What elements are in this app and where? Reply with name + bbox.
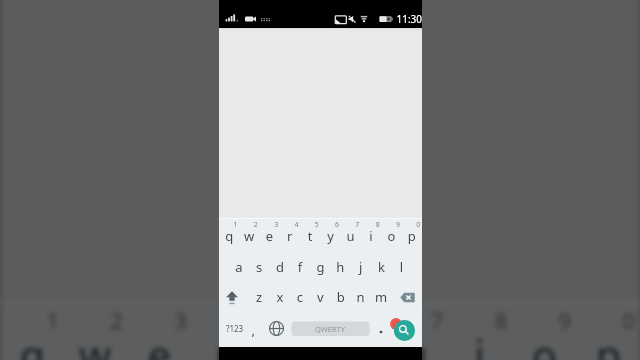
button[interactable] bbox=[290, 252, 310, 282]
button[interactable] bbox=[289, 313, 372, 345]
button[interactable] bbox=[392, 252, 412, 282]
button[interactable] bbox=[361, 220, 381, 250]
button[interactable] bbox=[219, 220, 239, 250]
button[interactable] bbox=[341, 220, 361, 250]
button[interactable] bbox=[280, 220, 300, 250]
button[interactable] bbox=[249, 252, 269, 282]
button[interactable] bbox=[351, 282, 371, 312]
button[interactable] bbox=[321, 220, 341, 250]
button[interactable] bbox=[290, 282, 310, 312]
button[interactable] bbox=[251, 313, 265, 345]
button[interactable] bbox=[239, 220, 259, 250]
button[interactable] bbox=[331, 282, 351, 312]
button[interactable] bbox=[371, 282, 391, 312]
button[interactable] bbox=[402, 220, 422, 250]
button[interactable] bbox=[310, 252, 330, 282]
button[interactable] bbox=[270, 252, 290, 282]
button[interactable] bbox=[265, 313, 289, 345]
button[interactable] bbox=[372, 313, 390, 345]
button[interactable] bbox=[392, 282, 422, 312]
button[interactable] bbox=[381, 220, 401, 250]
button[interactable] bbox=[260, 220, 280, 250]
button[interactable] bbox=[219, 313, 251, 345]
button[interactable] bbox=[351, 252, 371, 282]
button[interactable] bbox=[331, 252, 351, 282]
button[interactable] bbox=[390, 313, 420, 345]
button[interactable] bbox=[310, 282, 330, 312]
button[interactable] bbox=[300, 220, 320, 250]
button[interactable] bbox=[371, 252, 391, 282]
button[interactable] bbox=[219, 282, 249, 312]
button[interactable] bbox=[229, 252, 249, 282]
button[interactable] bbox=[249, 282, 269, 312]
button[interactable] bbox=[270, 282, 290, 312]
